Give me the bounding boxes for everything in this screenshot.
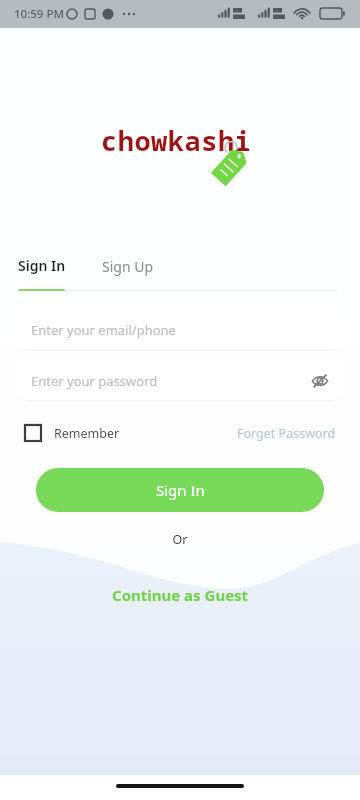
staticText: Enter your password bbox=[31, 372, 158, 390]
button[interactable]: Sign In bbox=[36, 468, 324, 512]
button[interactable]: Forget Password bbox=[237, 421, 336, 446]
staticText: Remember bbox=[54, 425, 120, 442]
staticText: Sign In bbox=[156, 480, 205, 500]
staticText: Continue as Guest bbox=[112, 585, 249, 605]
button[interactable]: Show password bbox=[309, 370, 331, 392]
staticText: Sign In bbox=[18, 256, 66, 275]
button[interactable]: Enter your password bbox=[17, 361, 343, 400]
staticText: Or bbox=[17, 531, 343, 548]
button[interactable]: Continue as Guest bbox=[102, 581, 259, 609]
staticText: 10:59 PM bbox=[14, 6, 65, 22]
staticText: Forget Password bbox=[237, 425, 336, 442]
staticText: Enter your email/phone bbox=[31, 321, 176, 339]
button[interactable]: Sign In bbox=[18, 252, 70, 281]
staticText: chowkashi bbox=[101, 122, 252, 159]
staticText: Sign Up bbox=[102, 257, 154, 276]
button[interactable]: Sign Up bbox=[98, 253, 158, 280]
button[interactable]: Remember bbox=[24, 420, 120, 446]
button[interactable]: Enter your email/phone bbox=[17, 310, 343, 349]
